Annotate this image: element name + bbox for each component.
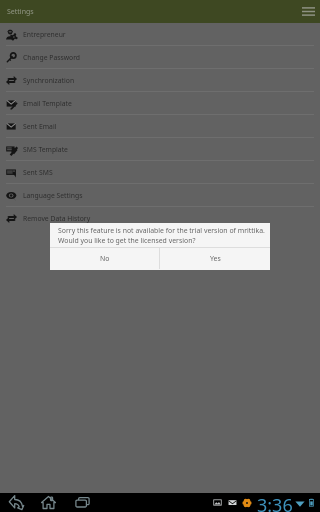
button[interactable]: Remove Data History bbox=[0, 207, 320, 229]
button[interactable]: Yes bbox=[160, 248, 270, 269]
button[interactable]: More options bbox=[297, 0, 320, 23]
button[interactable]: Sent Email bbox=[0, 115, 320, 137]
button[interactable]: SMS Template bbox=[0, 138, 320, 160]
staticText: Remove Data History bbox=[23, 214, 91, 223]
button[interactable]: No bbox=[50, 248, 159, 269]
button[interactable]: Sent SMS bbox=[0, 161, 320, 183]
staticText: Would you like to get the licensed versi… bbox=[58, 236, 196, 245]
staticText: Settings bbox=[7, 7, 34, 17]
staticText: Language Settings bbox=[23, 191, 83, 200]
staticText: Synchronization bbox=[23, 76, 75, 85]
staticText: No bbox=[100, 254, 110, 263]
staticText: Yes bbox=[210, 254, 221, 263]
button[interactable]: Change Password bbox=[0, 46, 320, 68]
staticText: Email Template bbox=[23, 99, 72, 108]
staticText: Change Password bbox=[23, 53, 81, 62]
button[interactable]: Synchronization bbox=[0, 69, 320, 91]
button[interactable]: Back bbox=[7, 493, 26, 512]
staticText: 3:36 bbox=[257, 493, 293, 512]
button[interactable]: Entrepreneur bbox=[0, 23, 320, 45]
staticText: Sent Email bbox=[23, 122, 57, 131]
button[interactable]: Email Template bbox=[0, 92, 320, 114]
button[interactable]: Language Settings bbox=[0, 184, 320, 206]
button[interactable]: Recent apps bbox=[73, 493, 92, 512]
staticText: Sorry this feature is not available for … bbox=[58, 226, 265, 235]
staticText: Sent SMS bbox=[23, 168, 53, 177]
staticText: SMS Template bbox=[23, 145, 68, 154]
staticText: Entrepreneur bbox=[23, 30, 66, 39]
button[interactable]: Home bbox=[39, 493, 58, 512]
